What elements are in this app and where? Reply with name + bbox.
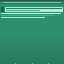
button[interactable] <box>1 13 64 14</box>
button[interactable] <box>1 7 63 12</box>
button[interactable] <box>1 15 64 16</box>
button[interactable] <box>1 17 64 18</box>
button[interactable]: Navigate up <box>0 1 64 4</box>
